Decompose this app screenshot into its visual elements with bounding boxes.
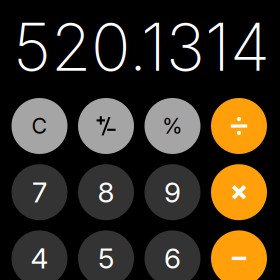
button[interactable]: 4 bbox=[11, 230, 67, 280]
button[interactable]: 7 bbox=[11, 164, 67, 220]
button[interactable]: 9 bbox=[144, 164, 200, 220]
button[interactable]: C bbox=[11, 98, 67, 154]
button[interactable]: Subtract bbox=[211, 230, 267, 280]
button[interactable]: Plus minus bbox=[78, 98, 134, 154]
staticText: % bbox=[162, 113, 183, 139]
button[interactable]: 8 bbox=[78, 164, 134, 220]
button[interactable]: 5 bbox=[78, 230, 134, 280]
staticText: 4 bbox=[30, 241, 48, 275]
staticText: 7 bbox=[32, 175, 47, 209]
button[interactable]: Multiply bbox=[211, 164, 267, 220]
button[interactable]: 6 bbox=[144, 230, 200, 280]
button[interactable]: % bbox=[144, 98, 200, 154]
staticText: 520.1314 bbox=[13, 7, 270, 86]
staticText: 9 bbox=[164, 175, 181, 209]
staticText: C bbox=[31, 113, 47, 139]
staticText: 8 bbox=[97, 175, 114, 209]
button[interactable]: Divide bbox=[211, 98, 267, 154]
staticText: 5 bbox=[98, 241, 114, 275]
staticText: 6 bbox=[164, 241, 181, 275]
